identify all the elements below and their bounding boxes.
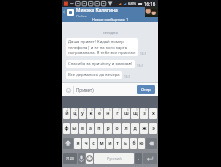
staticText: ш: [124, 110, 129, 117]
button[interactable]: к: [87, 108, 94, 119]
staticText: м: [99, 140, 104, 147]
staticText: 16:16: [144, 1, 156, 7]
button[interactable]: ж: [140, 123, 148, 134]
button[interactable]: Emoji keyboard: [86, 153, 93, 164]
staticText: а: [89, 125, 92, 132]
button[interactable]: в: [79, 123, 86, 134]
button[interactable]: я: [74, 138, 81, 149]
button[interactable]: г: [113, 108, 121, 119]
button[interactable]: Profile photo: [145, 7, 158, 17]
staticText: з: [143, 110, 146, 117]
button[interactable]: б: [130, 138, 137, 149]
button[interactable]: ч: [82, 138, 89, 149]
button[interactable]: щ: [131, 108, 139, 119]
button[interactable]: е: [95, 108, 103, 119]
button[interactable]: п: [95, 123, 103, 134]
staticText: Отпр: [141, 87, 151, 92]
staticText: 16:1: [124, 75, 131, 79]
button[interactable]: х: [149, 108, 157, 119]
staticText: ф: [64, 125, 69, 132]
staticText: л: [124, 125, 128, 132]
staticText: к: [89, 110, 93, 117]
button[interactable]: Emoji: [65, 87, 71, 93]
staticText: 5: [100, 108, 102, 112]
staticText: б: [132, 140, 136, 147]
button[interactable]: ф: [63, 123, 70, 134]
button[interactable]: ы: [71, 123, 78, 134]
staticText: Привет): [76, 87, 94, 93]
staticText: 16:1: [140, 52, 147, 56]
button[interactable]: ш: [122, 108, 130, 119]
button[interactable]: ь: [122, 138, 129, 149]
staticText: 9: [136, 108, 138, 112]
button[interactable]: Русский: [94, 153, 134, 164]
staticText: сегодня: [103, 30, 118, 35]
staticText: 2: [75, 108, 77, 112]
staticText: н: [106, 110, 110, 117]
staticText: Online: [76, 14, 87, 17]
staticText: 3: [83, 108, 85, 112]
staticText: Минэка Калягина: [76, 7, 118, 14]
button[interactable]: л: [122, 123, 130, 134]
button[interactable]: Enter: [143, 153, 157, 164]
staticText: у: [81, 110, 84, 117]
staticText: х: [152, 110, 155, 117]
button[interactable]: н: [104, 108, 112, 119]
staticText: ж: [142, 125, 147, 132]
button[interactable]: Back: [62, 7, 66, 17]
staticText: 16:1: [137, 64, 144, 68]
button[interactable]: с: [90, 138, 97, 149]
button[interactable]: ю: [138, 138, 145, 149]
staticText: п: [97, 125, 101, 132]
button[interactable]: т: [114, 138, 121, 149]
staticText: о: [115, 125, 119, 132]
staticText: щ: [133, 110, 138, 117]
staticText: 0: [145, 108, 147, 112]
button[interactable]: Shift: [63, 138, 73, 149]
button[interactable]: Отпр: [137, 85, 155, 94]
staticText: 1: [67, 108, 69, 112]
staticText: ч: [84, 140, 88, 147]
staticText: в: [81, 125, 84, 132]
staticText: я: [76, 140, 80, 147]
staticText: 6: [109, 108, 111, 112]
staticText: е: [98, 110, 101, 117]
staticText: 7: [118, 108, 120, 112]
button[interactable]: з: [140, 108, 148, 119]
button[interactable]: ц: [71, 108, 78, 119]
button[interactable]: Backspace: [146, 138, 157, 149]
staticText: й: [65, 110, 69, 117]
staticText: ю: [139, 140, 144, 147]
staticText: с: [92, 140, 95, 147]
button[interactable]: м: [98, 138, 105, 149]
staticText: 8: [127, 108, 129, 112]
button[interactable]: о: [113, 123, 121, 134]
staticText: .: [138, 156, 139, 161]
button[interactable]: Attach: [149, 7, 158, 17]
button[interactable]: й: [63, 108, 70, 119]
button[interactable]: .: [135, 153, 142, 164]
button[interactable]: д: [131, 123, 139, 134]
staticText: 68%: [128, 1, 137, 7]
staticText: Даша привет! Кидай номер телефона| и кт …: [68, 39, 136, 55]
button[interactable]: а: [87, 123, 94, 134]
staticText: Русский: [107, 156, 122, 161]
button[interactable]: и: [106, 138, 113, 149]
staticText: р: [106, 125, 110, 132]
button[interactable]: Voice input: [78, 153, 85, 164]
staticText: и: [108, 140, 112, 147]
staticText: э: [152, 125, 155, 132]
button[interactable]: э: [149, 123, 157, 134]
staticText: т: [116, 140, 119, 147]
staticText: ц: [73, 110, 77, 117]
button[interactable]: у: [79, 108, 86, 119]
button[interactable]: р: [104, 123, 112, 134]
staticText: г: [116, 110, 119, 117]
staticText: 4: [91, 108, 93, 112]
staticText: д: [133, 125, 137, 132]
staticText: ?123: [66, 156, 74, 161]
button[interactable]: ?123: [63, 153, 77, 164]
